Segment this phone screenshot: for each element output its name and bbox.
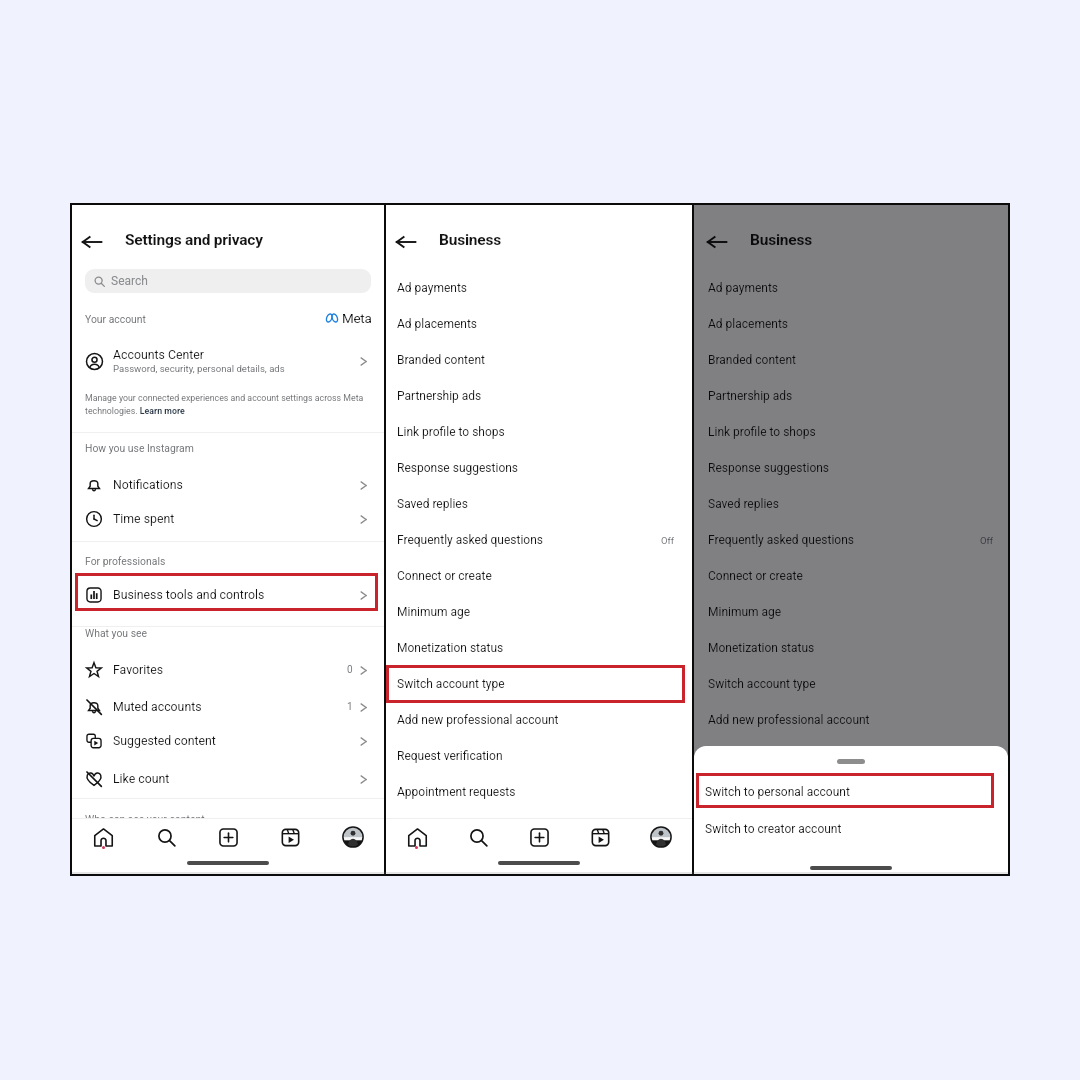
staticText: Appointment requests bbox=[397, 785, 516, 799]
button[interactable]: Notifications bbox=[74, 467, 382, 503]
staticText: Switch to creator account bbox=[705, 822, 842, 836]
button[interactable]: Favorites bbox=[74, 652, 382, 688]
button[interactable]: Ad placements bbox=[386, 306, 692, 342]
staticText: Switch to personal account bbox=[705, 785, 850, 799]
button[interactable]: Saved replies bbox=[697, 486, 1011, 522]
button[interactable]: Muted accounts bbox=[74, 689, 382, 725]
button[interactable]: Search bbox=[85, 269, 371, 293]
staticText: Saved replies bbox=[397, 497, 468, 511]
button[interactable]: Search bbox=[462, 821, 494, 853]
staticText: Minimum age bbox=[397, 605, 471, 619]
staticText: Favorites bbox=[113, 663, 164, 677]
staticText: Link profile to shops bbox=[397, 425, 505, 439]
staticText: How you use Instagram bbox=[85, 442, 194, 454]
staticText: Partnership ads bbox=[397, 389, 482, 403]
button[interactable]: Back bbox=[702, 227, 732, 257]
button[interactable]: Profile bbox=[337, 821, 369, 853]
staticText: 0 bbox=[347, 664, 353, 676]
staticText: Add new professional account bbox=[708, 713, 870, 727]
button[interactable]: Monetization status bbox=[386, 630, 692, 666]
button[interactable]: Switch to personal account bbox=[694, 774, 1008, 809]
button[interactable]: Switch account type bbox=[697, 666, 1011, 702]
button[interactable]: Partnership ads bbox=[697, 378, 1011, 414]
staticText: Branded content bbox=[397, 353, 485, 367]
staticText: Partnership ads bbox=[708, 389, 793, 403]
staticText: Settings and privacy bbox=[125, 231, 263, 249]
staticText: Ad placements bbox=[397, 317, 478, 331]
button[interactable]: Ad payments bbox=[386, 270, 692, 306]
button[interactable]: Add new professional account bbox=[697, 702, 1011, 738]
button[interactable]: Back bbox=[391, 227, 421, 257]
staticText: Minimum age bbox=[708, 605, 782, 619]
button[interactable]: Link profile to shops bbox=[386, 414, 692, 450]
staticText: Meta bbox=[342, 310, 372, 326]
staticText: Switch account type bbox=[708, 677, 816, 691]
button[interactable]: Request verification bbox=[386, 738, 692, 774]
staticText: Response suggestions bbox=[708, 461, 830, 475]
button[interactable]: Saved replies bbox=[386, 486, 692, 522]
button[interactable]: Search bbox=[150, 821, 182, 853]
staticText: For professionals bbox=[85, 555, 166, 567]
staticText: Monetization status bbox=[708, 641, 815, 655]
staticText: Connect or create bbox=[708, 569, 803, 583]
button[interactable]: Partnership ads bbox=[386, 378, 692, 414]
button[interactable]: Minimum age bbox=[386, 594, 692, 630]
staticText: Switch account type bbox=[397, 677, 505, 691]
button[interactable]: Ad placements bbox=[697, 306, 1011, 342]
staticText: Frequently asked questions bbox=[397, 533, 544, 547]
button[interactable]: Create bbox=[212, 821, 244, 853]
button[interactable]: Profile bbox=[645, 821, 677, 853]
staticText: Add new professional account bbox=[397, 713, 559, 727]
button[interactable]: Back bbox=[77, 227, 107, 257]
staticText: Suggested content bbox=[113, 734, 216, 748]
staticText: Frequently asked questions bbox=[708, 533, 855, 547]
staticText: Time spent bbox=[113, 512, 175, 526]
staticText: Business tools and controls bbox=[113, 588, 265, 602]
staticText: Off bbox=[980, 535, 994, 546]
button[interactable]: Home bbox=[401, 821, 433, 853]
staticText: Who can see your content bbox=[85, 813, 205, 825]
button[interactable]: Like count bbox=[74, 761, 382, 797]
button[interactable]: Branded content bbox=[386, 342, 692, 378]
staticText: Off bbox=[661, 535, 675, 546]
button[interactable]: Home bbox=[87, 821, 119, 853]
button[interactable]: Frequently asked questions bbox=[386, 522, 692, 558]
button[interactable]: Connect or create bbox=[386, 558, 692, 594]
button[interactable]: Switch to creator account bbox=[694, 812, 1008, 846]
button[interactable]: Appointment requests bbox=[386, 774, 692, 810]
button[interactable]: Ad payments bbox=[697, 270, 1011, 306]
staticText: Password, security, personal details, ad… bbox=[113, 363, 285, 374]
button[interactable]: Suggested content bbox=[74, 723, 382, 759]
staticText: Request verification bbox=[397, 749, 503, 763]
button[interactable]: Frequently asked questions bbox=[697, 522, 1011, 558]
button[interactable]: Switch account type bbox=[386, 666, 692, 702]
staticText: Business bbox=[439, 231, 502, 249]
staticText: Ad placements bbox=[708, 317, 789, 331]
button[interactable]: Connect or create bbox=[697, 558, 1011, 594]
button[interactable]: Add new professional account bbox=[386, 702, 692, 738]
button[interactable]: Response suggestions bbox=[697, 450, 1011, 486]
button[interactable]: Reels bbox=[584, 821, 616, 853]
button[interactable]: Create bbox=[523, 821, 555, 853]
staticText: 1 bbox=[347, 701, 353, 713]
button[interactable]: Link profile to shops bbox=[697, 414, 1011, 450]
staticText: Muted accounts bbox=[113, 700, 202, 714]
staticText: Ad payments bbox=[397, 281, 468, 295]
staticText: Your account bbox=[85, 313, 146, 325]
staticText: Connect or create bbox=[397, 569, 492, 583]
staticText: Branded content bbox=[708, 353, 796, 367]
button[interactable]: Branded content bbox=[697, 342, 1011, 378]
staticText: Ad payments bbox=[708, 281, 779, 295]
button[interactable]: Reels bbox=[274, 821, 306, 853]
button[interactable]: Response suggestions bbox=[386, 450, 692, 486]
button[interactable]: Time spent bbox=[74, 501, 382, 537]
staticText: Manage your connected experiences and ac… bbox=[85, 393, 371, 416]
staticText: Saved replies bbox=[708, 497, 779, 511]
button[interactable]: Accounts Center bbox=[74, 343, 382, 379]
button[interactable]: Business tools and controls bbox=[74, 577, 382, 613]
staticText: Like count bbox=[113, 772, 170, 786]
staticText: Notifications bbox=[113, 478, 183, 492]
button[interactable]: Minimum age bbox=[697, 594, 1011, 630]
button[interactable]: Monetization status bbox=[697, 630, 1011, 666]
staticText: Accounts Center bbox=[113, 348, 204, 362]
